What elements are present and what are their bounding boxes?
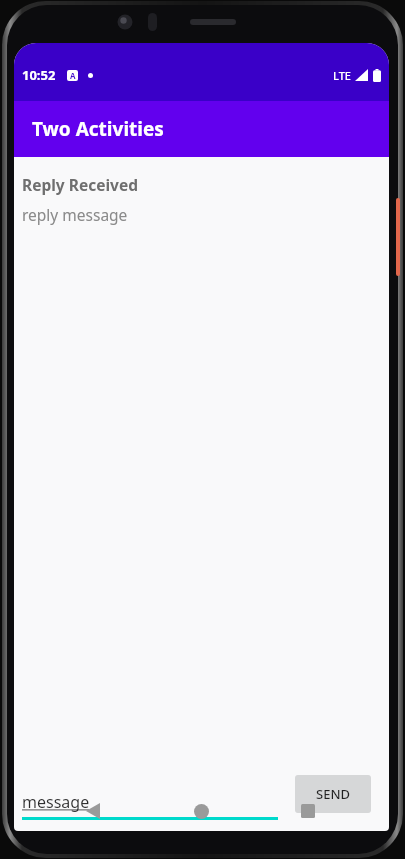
staticText: Two Activities bbox=[32, 116, 164, 142]
staticText: A bbox=[70, 70, 76, 81]
staticText: 10:52 bbox=[22, 66, 56, 84]
staticText: reply message bbox=[22, 204, 128, 225]
staticText: LTE bbox=[333, 68, 351, 83]
button[interactable]: Two Activities bbox=[14, 101, 389, 157]
button[interactable]: Back bbox=[78, 791, 108, 835]
staticText: Reply Received bbox=[22, 174, 138, 195]
staticText: message bbox=[22, 791, 90, 813]
button[interactable]: message bbox=[22, 776, 278, 820]
button[interactable]: Recent apps bbox=[293, 791, 323, 835]
button[interactable]: Home bbox=[186, 791, 216, 835]
button[interactable]: SEND bbox=[295, 775, 371, 813]
staticText: SEND bbox=[316, 785, 350, 803]
